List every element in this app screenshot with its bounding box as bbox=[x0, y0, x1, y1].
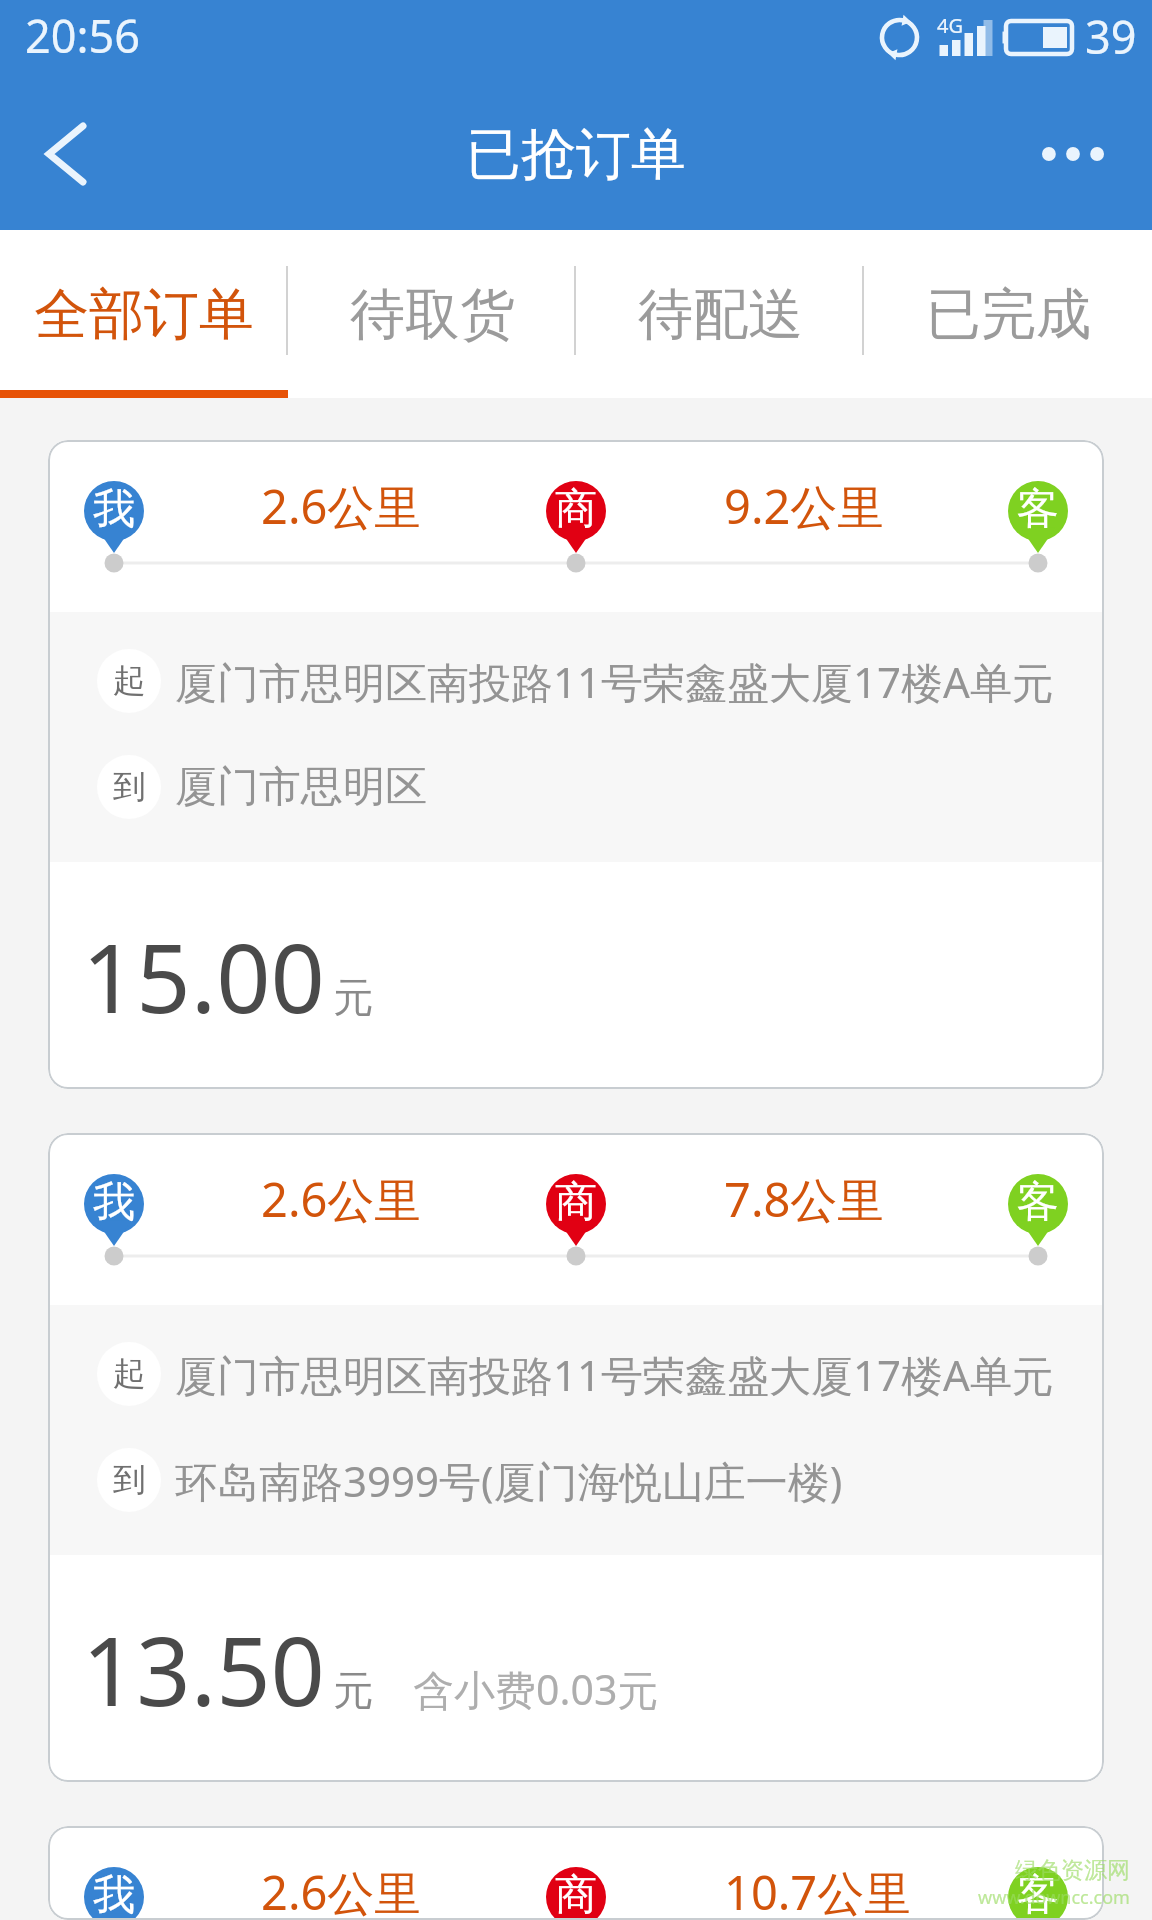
staticText: 环岛南路3999号(厦门海悦山庄一楼) bbox=[175, 1452, 843, 1509]
button[interactable]: 已完成 bbox=[864, 230, 1152, 398]
button[interactable]: 全部订单 bbox=[0, 230, 288, 398]
button[interactable]: 我 bbox=[48, 440, 1104, 1089]
staticText: 20:56 bbox=[25, 5, 141, 66]
staticText: 7.8公里 bbox=[724, 1167, 885, 1231]
staticText: 到 bbox=[113, 766, 146, 808]
staticText: 39 bbox=[1085, 6, 1137, 67]
staticText: 2.6公里 bbox=[261, 474, 422, 538]
staticText: 我 bbox=[93, 1176, 135, 1229]
button[interactable]: 待取货 bbox=[288, 230, 576, 398]
staticText: 到 bbox=[113, 1459, 146, 1501]
staticText: 我 bbox=[93, 1869, 135, 1920]
button[interactable]: More options bbox=[1012, 93, 1134, 215]
staticText: 含小费0.03元 bbox=[413, 1661, 659, 1717]
button[interactable]: 我 bbox=[48, 1826, 1104, 1920]
staticText: 10.7公里 bbox=[724, 1860, 912, 1920]
staticText: 15.00 bbox=[82, 911, 325, 1040]
button[interactable]: Back bbox=[0, 84, 136, 224]
staticText: 已抢订单 bbox=[466, 120, 686, 189]
staticText: 商 bbox=[555, 1869, 597, 1920]
staticText: 我 bbox=[93, 483, 135, 536]
staticText: 厦门市思明区 bbox=[175, 761, 427, 814]
staticText: 全部订单 bbox=[34, 280, 254, 349]
staticText: 2.6公里 bbox=[261, 1860, 422, 1920]
staticText: 元 bbox=[333, 1665, 373, 1715]
staticText: 起 bbox=[113, 1353, 146, 1395]
staticText: 厦门市思明区南投路11号荣鑫盛大厦17楼A单元 bbox=[175, 653, 1054, 710]
button[interactable]: 待配送 bbox=[576, 230, 864, 398]
staticText: 待配送 bbox=[638, 280, 803, 349]
staticText: 起 bbox=[113, 660, 146, 702]
staticText: 2.6公里 bbox=[261, 1167, 422, 1231]
staticText: 厦门市思明区南投路11号荣鑫盛大厦17楼A单元 bbox=[175, 1346, 1054, 1403]
staticText: 绿色资源网 bbox=[1015, 1856, 1130, 1885]
staticText: www.downcc.com bbox=[978, 1885, 1130, 1910]
staticText: 客 bbox=[1017, 1869, 1059, 1920]
staticText: 已完成 bbox=[926, 280, 1091, 349]
staticText: 商 bbox=[555, 1176, 597, 1229]
staticText: 商 bbox=[555, 483, 597, 536]
staticText: 13.50 bbox=[82, 1604, 325, 1733]
staticText: 客 bbox=[1017, 1176, 1059, 1229]
staticText: 客 bbox=[1017, 483, 1059, 536]
button[interactable]: 我 bbox=[48, 1133, 1104, 1782]
staticText: 待取货 bbox=[350, 280, 515, 349]
staticText: 9.2公里 bbox=[724, 474, 885, 538]
staticText: 4G bbox=[937, 12, 963, 39]
staticText: 元 bbox=[333, 972, 373, 1022]
